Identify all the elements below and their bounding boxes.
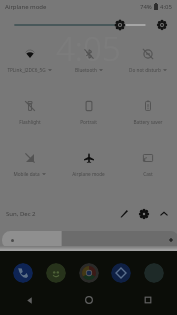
button[interactable]: Airplane mode [59, 142, 118, 177]
staticText: Portrait [80, 119, 97, 125]
staticText: Bluetooth [75, 67, 97, 73]
staticText: Airplane mode [5, 3, 47, 11]
staticText: 4:05 [56, 26, 121, 71]
staticText: Mobile data [13, 171, 40, 177]
staticText: Do not disturb [129, 67, 161, 73]
staticText: Battery saver [133, 119, 163, 125]
button[interactable]: App [46, 263, 66, 283]
button[interactable]: Collapse [157, 207, 171, 221]
staticText: Sun, Dec 2 [6, 210, 36, 218]
button[interactable]: Home [59, 296, 118, 304]
button[interactable]: Mobile data [0, 142, 59, 177]
button[interactable]: Back [0, 296, 59, 305]
button[interactable]: Brightness [0, 15, 177, 35]
button[interactable]: Recents [118, 296, 177, 304]
staticText: Cast [143, 171, 153, 177]
button[interactable]: Cast [118, 142, 177, 177]
staticText: 74% [140, 3, 152, 11]
staticText: 4:05 [160, 3, 172, 11]
button[interactable]: Battery saver [118, 90, 177, 125]
button[interactable]: Edit [117, 207, 131, 221]
staticText: TPLink_J2DC6_5G [7, 67, 46, 73]
button[interactable]: App [111, 263, 131, 283]
button[interactable]: Settings [137, 207, 151, 221]
button[interactable] [2, 231, 177, 249]
button[interactable]: Flashlight [0, 90, 59, 125]
button[interactable]: Portrait [59, 90, 118, 125]
staticText: Flashlight [19, 119, 41, 125]
button[interactable]: App [13, 263, 33, 283]
button[interactable]: TPLink_J2DC6_5G [0, 38, 59, 73]
button[interactable]: Do not disturb [118, 38, 177, 73]
button[interactable]: Bluetooth [59, 38, 118, 73]
button[interactable]: App [144, 263, 164, 283]
staticText: Airplane mode [72, 171, 105, 177]
button[interactable]: App [79, 263, 99, 283]
